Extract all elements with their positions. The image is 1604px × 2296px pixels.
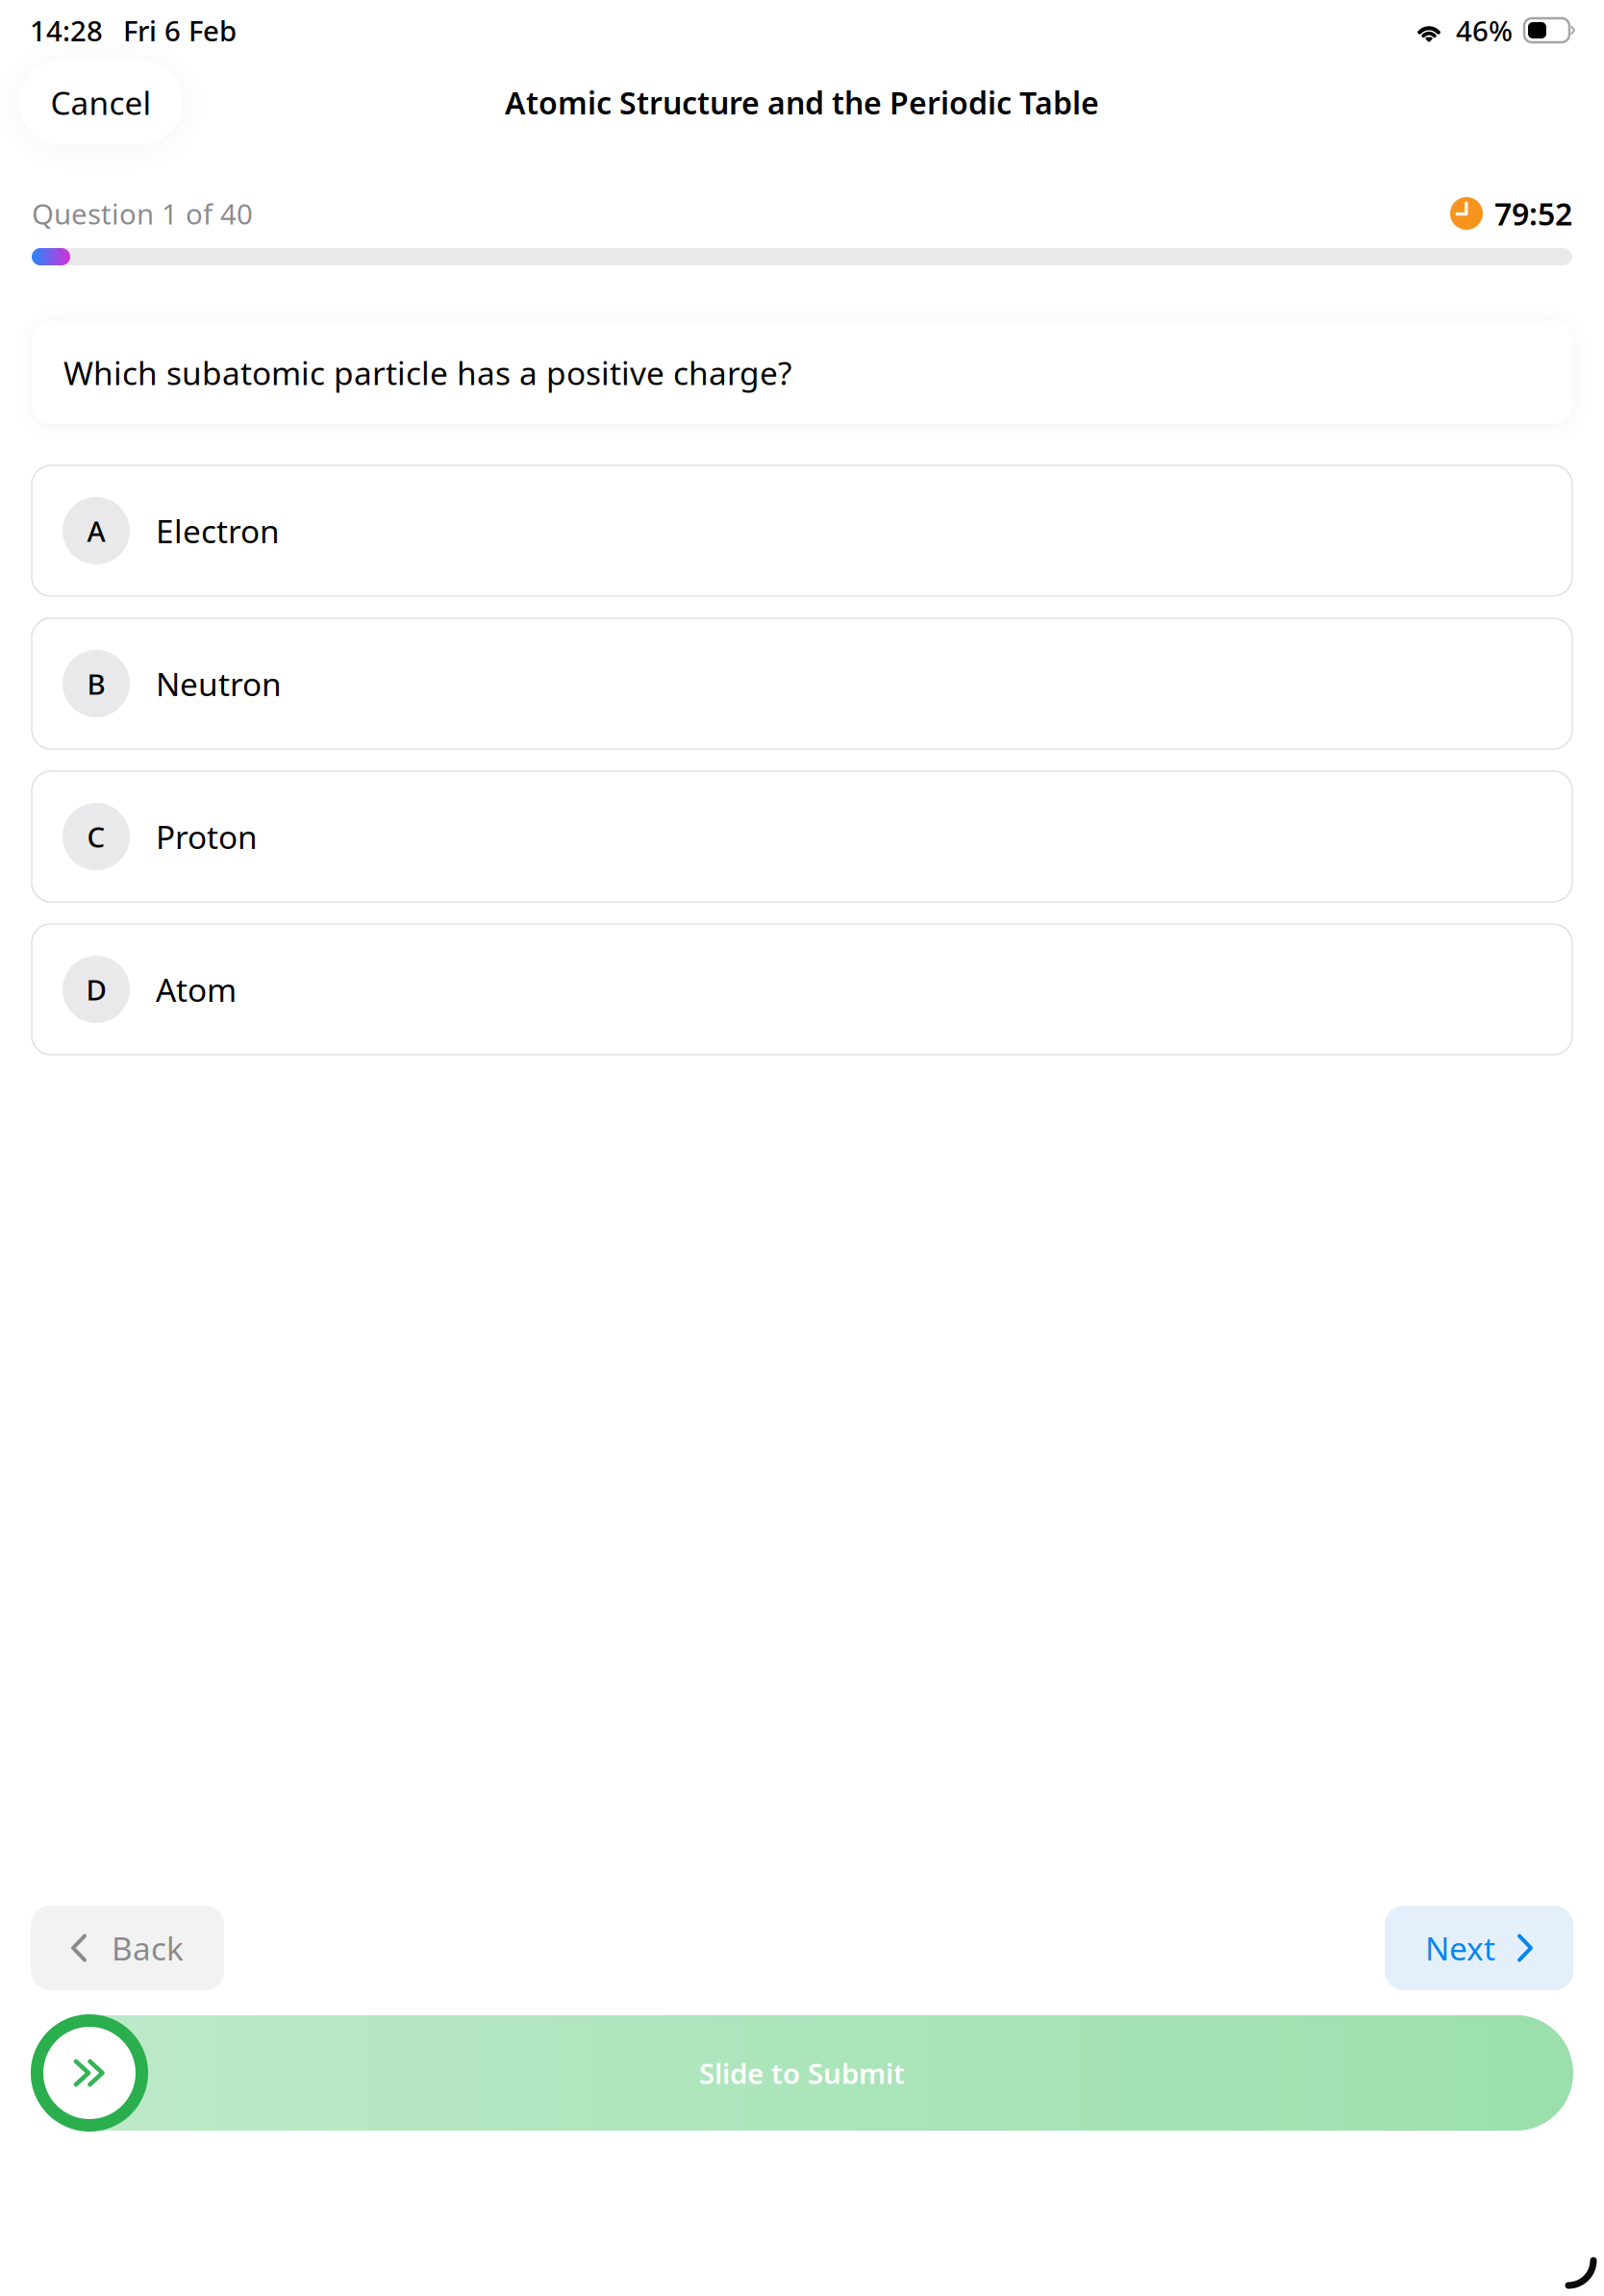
staticText: Proton: [156, 815, 258, 858]
staticText: Neutron: [156, 662, 282, 705]
button[interactable]: Slide to Submit: [0, 2014, 1604, 2132]
staticText: B: [87, 665, 105, 702]
staticText: A: [87, 512, 105, 549]
staticText: D: [86, 971, 106, 1008]
staticText: Cancel: [50, 81, 151, 124]
button[interactable]: A: [32, 465, 1572, 596]
staticText: 79:52: [1494, 193, 1572, 234]
button[interactable]: B: [32, 618, 1572, 749]
staticText: 14:28: [30, 12, 103, 49]
staticText: C: [87, 818, 105, 855]
staticText: Next: [1425, 1927, 1495, 1969]
staticText: Atomic Structure and the Periodic Table: [505, 82, 1099, 123]
button[interactable]: D: [32, 924, 1572, 1055]
button[interactable]: C: [32, 771, 1572, 902]
staticText: Which subatomic particle has a positive …: [63, 351, 791, 394]
staticText: Electron: [156, 509, 280, 552]
button[interactable]: Cancel: [19, 61, 183, 144]
button[interactable]: Back: [31, 1906, 224, 1990]
button[interactable]: Next: [1385, 1906, 1573, 1990]
staticText: Back: [112, 1927, 184, 1969]
staticText: 46%: [1456, 12, 1513, 49]
staticText: Fri 6 Feb: [123, 12, 237, 49]
staticText: Question 1 of 40: [32, 195, 253, 232]
staticText: Atom: [156, 968, 237, 1011]
staticText: Slide to Submit: [699, 2054, 905, 2092]
